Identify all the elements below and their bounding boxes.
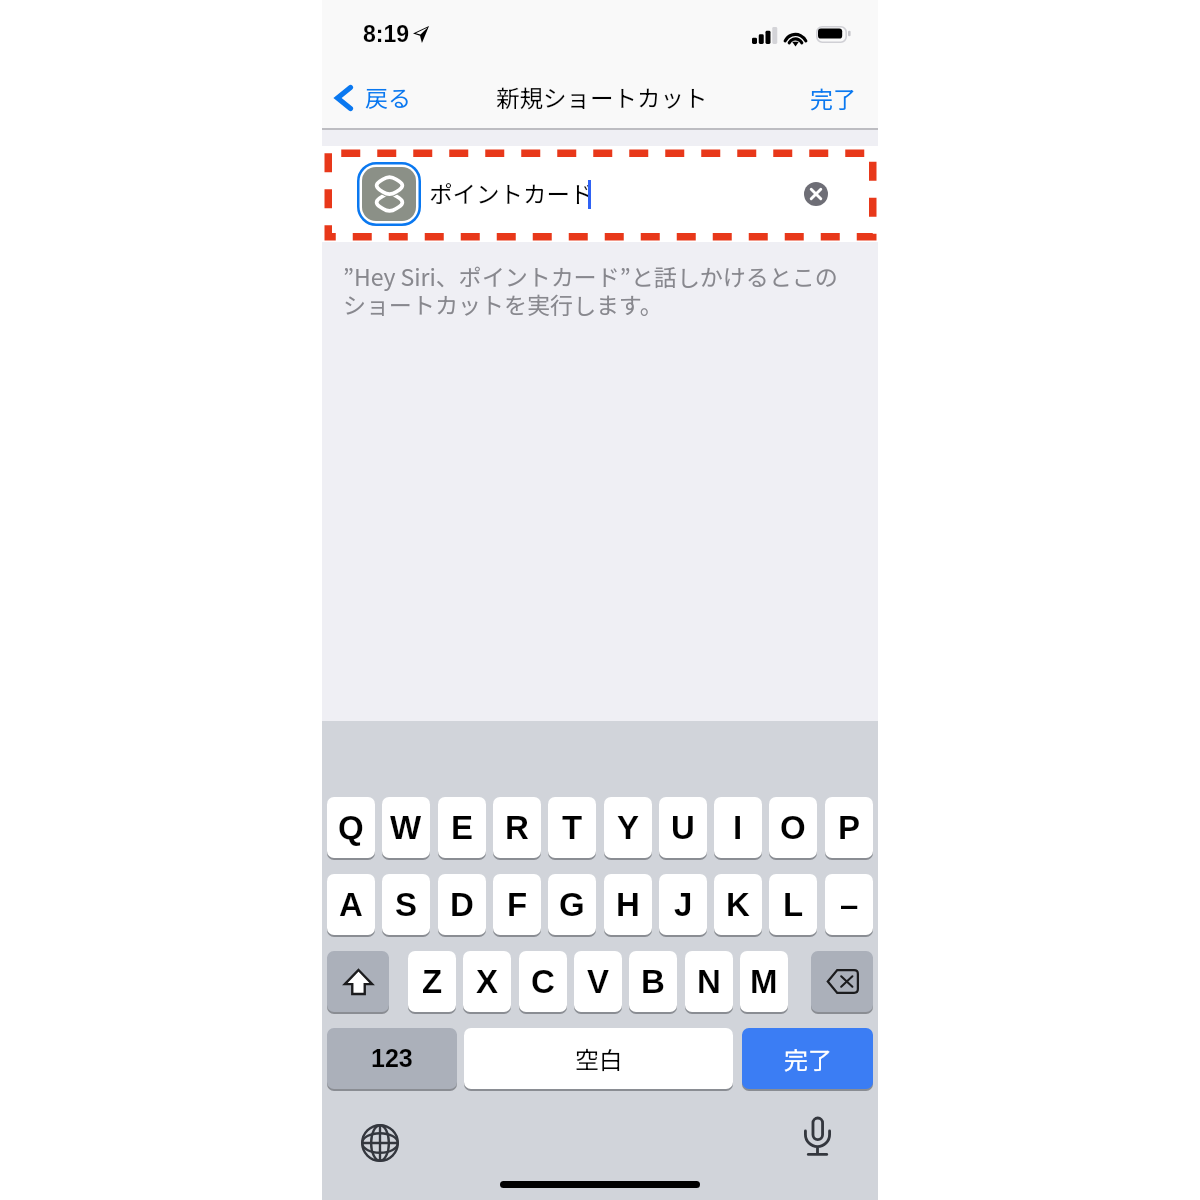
staticText: A: [339, 886, 363, 923]
button[interactable]: Q: [327, 797, 375, 860]
staticText: ”Hey Siri、ポイントカード”と話しかけるとこの: [343, 259, 838, 292]
staticText: V: [587, 963, 610, 1000]
staticText: S: [395, 886, 418, 923]
staticText: T: [562, 809, 583, 846]
staticText: G: [559, 886, 585, 923]
button[interactable]: G: [548, 874, 596, 937]
button[interactable]: A: [327, 874, 375, 937]
button[interactable]: Clear text: [794, 172, 838, 216]
staticText: H: [616, 886, 640, 923]
staticText: R: [505, 809, 529, 846]
button[interactable]: 戻る: [322, 68, 421, 128]
staticText: C: [531, 963, 555, 1000]
staticText: ポイントカード: [429, 176, 594, 210]
staticText: E: [451, 809, 474, 846]
button[interactable]: F: [493, 874, 541, 937]
button[interactable]: V: [574, 951, 622, 1014]
button[interactable]: L: [769, 874, 817, 937]
button[interactable]: Z: [408, 951, 456, 1014]
staticText: –: [840, 886, 859, 923]
button[interactable]: R: [493, 797, 541, 860]
button[interactable]: Backspace: [811, 951, 873, 1014]
staticText: K: [726, 886, 750, 923]
button[interactable]: Shift: [327, 951, 389, 1014]
staticText: D: [450, 886, 474, 923]
staticText: 新規ショートカット: [496, 80, 708, 114]
button[interactable]: B: [629, 951, 677, 1014]
button[interactable]: D: [438, 874, 486, 937]
button[interactable]: Y: [604, 797, 652, 860]
staticText: W: [390, 809, 422, 846]
button[interactable]: C: [519, 951, 567, 1014]
staticText: 123: [371, 1044, 413, 1072]
staticText: 8:19: [363, 21, 410, 47]
staticText: P: [838, 809, 861, 846]
button[interactable]: –: [825, 874, 873, 937]
button[interactable]: E: [438, 797, 486, 860]
staticText: Q: [338, 809, 364, 846]
button[interactable]: 完了: [742, 1028, 873, 1091]
staticText: 完了: [810, 81, 856, 114]
staticText: 戻る: [365, 80, 411, 113]
staticText: ショートカットを実行します。: [343, 287, 663, 320]
staticText: I: [733, 809, 743, 846]
button[interactable]: J: [659, 874, 707, 937]
staticText: Y: [617, 809, 640, 846]
button[interactable]: K: [714, 874, 762, 937]
button[interactable]: W: [382, 797, 430, 860]
staticText: 完了: [784, 1041, 832, 1076]
button[interactable]: S: [382, 874, 430, 937]
button[interactable]: P: [825, 797, 873, 860]
staticText: B: [641, 963, 665, 1000]
button[interactable]: N: [685, 951, 733, 1014]
button[interactable]: 123: [327, 1028, 457, 1091]
button[interactable]: Change keyboard: [355, 1118, 405, 1168]
staticText: L: [783, 886, 804, 923]
button[interactable]: Dictate: [792, 1111, 842, 1161]
button[interactable]: T: [548, 797, 596, 860]
staticText: N: [697, 963, 721, 1000]
staticText: U: [671, 809, 695, 846]
button[interactable]: H: [604, 874, 652, 937]
staticText: 空白: [575, 1041, 623, 1076]
staticText: F: [507, 886, 528, 923]
staticText: M: [750, 963, 778, 1000]
staticText: O: [780, 809, 806, 846]
button[interactable]: O: [769, 797, 817, 860]
button[interactable]: I: [714, 797, 762, 860]
button[interactable]: 完了: [792, 69, 878, 129]
staticText: X: [476, 963, 499, 1000]
staticText: Z: [422, 963, 443, 1000]
staticText: J: [674, 886, 693, 923]
button[interactable]: M: [740, 951, 788, 1014]
button[interactable]: U: [659, 797, 707, 860]
button[interactable]: 空白: [464, 1028, 733, 1091]
button[interactable]: ポイントカード: [322, 146, 878, 242]
button[interactable]: X: [463, 951, 511, 1014]
